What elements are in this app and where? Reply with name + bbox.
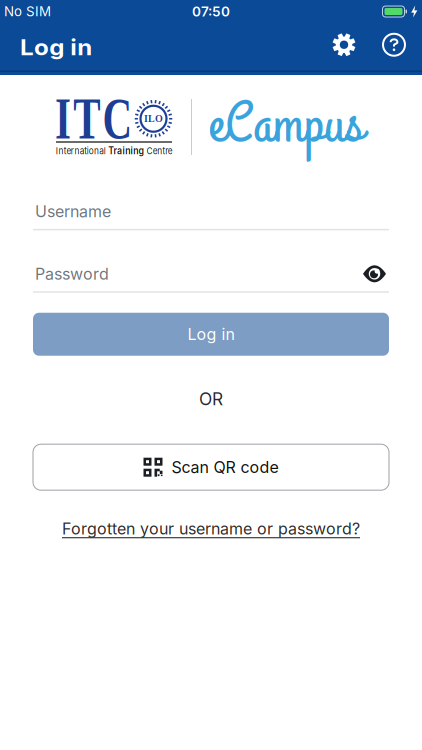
staticText: No SIM (4, 4, 51, 19)
staticText: ILO (144, 113, 163, 124)
button[interactable]: Log in (33, 313, 389, 356)
staticText: ITC (38, 86, 148, 151)
button[interactable]: Forgotten your username or password? (62, 519, 360, 538)
staticText: Scan QR code (171, 458, 278, 477)
staticText: Password (35, 264, 109, 283)
staticText: Forgotten your username or password? (62, 519, 360, 538)
button[interactable]: Help (369, 33, 422, 57)
staticText: eCampus (208, 86, 363, 163)
button[interactable]: Settings (319, 33, 369, 57)
staticText: OR (199, 389, 223, 409)
staticText: International Training Centre (48, 145, 179, 156)
staticText: Log in (187, 325, 234, 344)
button[interactable]: Scan QR code (33, 444, 389, 490)
staticText: 07:50 (192, 3, 230, 20)
staticText: Log in (20, 35, 82, 60)
staticText: Username (35, 202, 111, 221)
button[interactable]: Show password (363, 265, 389, 282)
